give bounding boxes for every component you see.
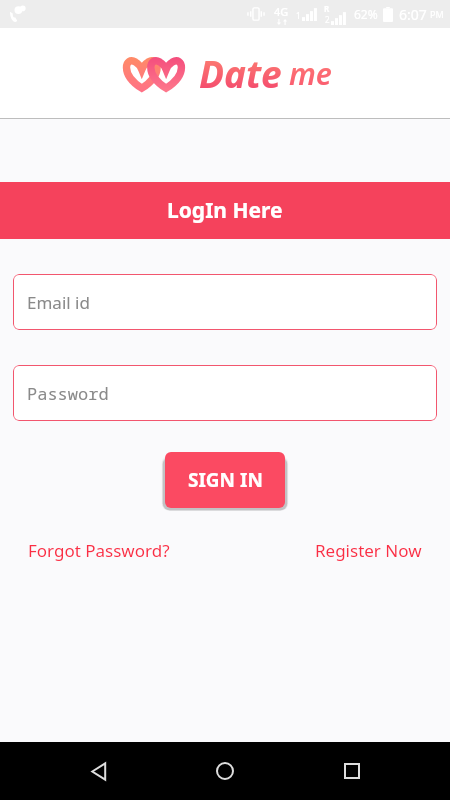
staticText: LogIn Here: [167, 196, 283, 225]
staticText: Forgot Password?: [28, 539, 170, 562]
staticText: 4G: [274, 4, 289, 19]
staticText: SIGN IN: [188, 467, 263, 493]
staticText: Register Now: [315, 539, 422, 562]
staticText: R: [324, 3, 330, 14]
staticText: 62%: [354, 6, 378, 22]
button[interactable]: Back: [71, 743, 127, 799]
staticText: 6:07: [399, 5, 427, 24]
staticText: 1: [296, 10, 301, 21]
button[interactable]: Forgot Password?: [28, 539, 170, 562]
button[interactable]: Recents: [324, 743, 380, 799]
button[interactable]: Email id: [13, 274, 437, 330]
staticText: Email id: [27, 291, 90, 314]
staticText: Date: [199, 48, 282, 98]
button[interactable]: SIGN IN: [165, 452, 285, 508]
staticText: me: [289, 53, 332, 94]
button[interactable]: LogIn Here: [0, 182, 450, 239]
button[interactable]: Home: [197, 743, 253, 799]
button[interactable]: Register Now: [315, 539, 422, 562]
staticText: Password: [27, 382, 109, 405]
button[interactable]: Password: [13, 365, 437, 421]
staticText: PM: [430, 8, 444, 20]
staticText: 2: [325, 14, 330, 25]
